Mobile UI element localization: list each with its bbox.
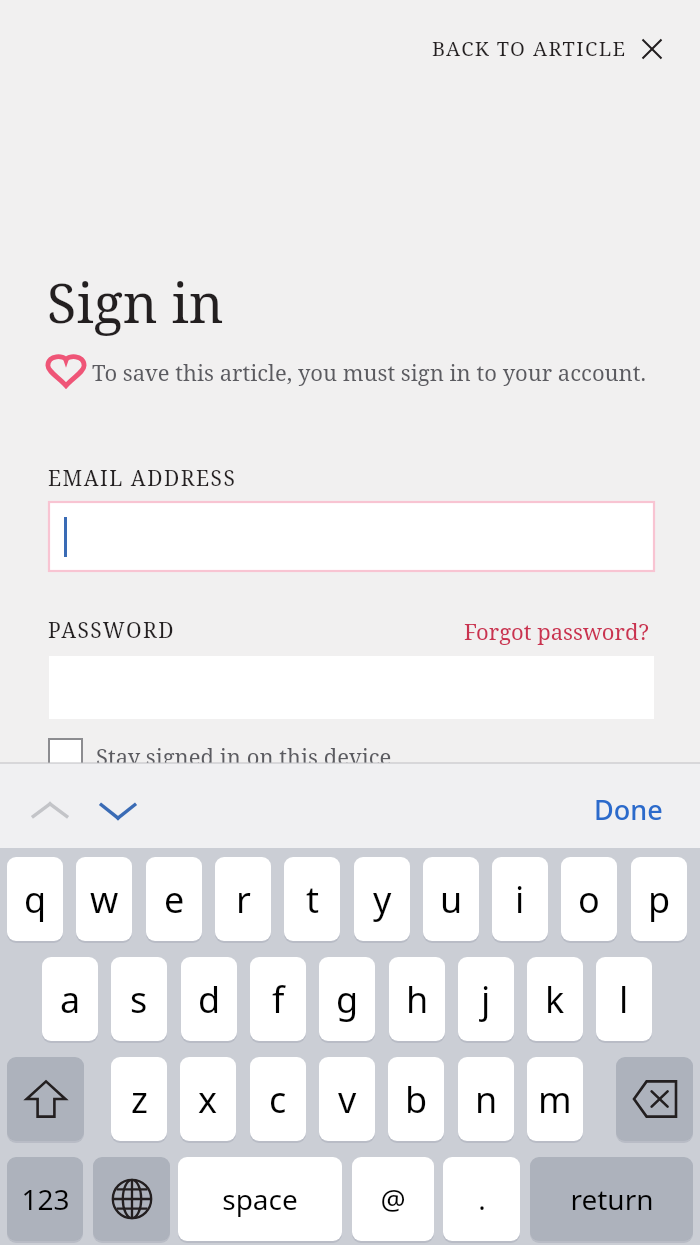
button[interactable]: n — [458, 1057, 514, 1141]
button[interactable]: a — [42, 957, 98, 1041]
button[interactable]: p — [631, 857, 687, 941]
staticText: t — [306, 875, 319, 924]
staticText: return — [570, 1180, 654, 1218]
button[interactable]: w — [76, 857, 132, 941]
staticText: EMAIL ADDRESS — [48, 464, 237, 493]
button[interactable]: return — [530, 1157, 693, 1241]
staticText: e — [164, 875, 185, 924]
button[interactable]: . — [443, 1157, 520, 1241]
button[interactable]: Done — [588, 785, 669, 834]
button[interactable]: Previous field — [28, 789, 72, 833]
button[interactable]: b — [388, 1057, 444, 1141]
staticText: PASSWORD — [48, 616, 176, 645]
button[interactable]: x — [180, 1057, 236, 1141]
staticText: Stay signed in on this device — [96, 741, 392, 763]
staticText: p — [648, 875, 671, 924]
staticText: q — [24, 875, 47, 924]
staticText: Forgot password? — [464, 616, 649, 646]
staticText: f — [272, 975, 285, 1024]
staticText: l — [619, 975, 629, 1024]
staticText: 123 — [21, 1180, 70, 1218]
button[interactable]: i — [492, 857, 548, 941]
staticText: . — [478, 1180, 486, 1218]
staticText: z — [131, 1075, 148, 1124]
staticText: k — [545, 975, 565, 1024]
button[interactable]: e — [146, 857, 202, 941]
staticText: u — [440, 875, 463, 924]
staticText: c — [269, 1075, 287, 1124]
staticText: v — [338, 1075, 357, 1124]
button[interactable]: f — [250, 957, 306, 1041]
button[interactable]: @ — [352, 1157, 434, 1241]
button[interactable]: r — [215, 857, 271, 941]
button[interactable]: y — [354, 857, 410, 941]
button[interactable]: 123 — [7, 1157, 83, 1241]
staticText: space — [222, 1180, 298, 1218]
staticText: y — [373, 875, 392, 924]
button[interactable]: d — [181, 957, 237, 1041]
button[interactable]: space — [178, 1157, 342, 1241]
staticText: s — [130, 975, 148, 1024]
staticText: g — [336, 975, 359, 1024]
other: Close — [641, 38, 663, 60]
button[interactable]: Shift — [7, 1057, 84, 1141]
button[interactable]: h — [389, 957, 445, 1041]
staticText: x — [198, 1075, 218, 1124]
staticText: h — [406, 975, 429, 1024]
button[interactable] — [49, 502, 654, 571]
button[interactable]: k — [527, 957, 583, 1041]
staticText: o — [578, 875, 600, 924]
button[interactable]: s — [111, 957, 167, 1041]
staticText: i — [515, 875, 525, 924]
button[interactable]: m — [527, 1057, 583, 1141]
staticText: BACK TO ARTICLE — [432, 35, 627, 62]
staticText: j — [481, 975, 491, 1024]
button[interactable]: BACK TO ARTICLE — [428, 31, 667, 66]
button[interactable]: Switch keyboard — [93, 1157, 170, 1241]
staticText: b — [405, 1075, 428, 1124]
button[interactable]: Backspace — [616, 1057, 693, 1141]
button[interactable]: g — [319, 957, 375, 1041]
button[interactable]: l — [596, 957, 652, 1041]
staticText: @ — [380, 1180, 406, 1218]
button[interactable]: t — [284, 857, 340, 941]
staticText: n — [475, 1075, 498, 1124]
button[interactable]: z — [111, 1057, 167, 1141]
staticText: m — [538, 1075, 572, 1124]
staticText: a — [60, 975, 81, 1024]
staticText: Sign in — [47, 265, 224, 339]
staticText: Done — [594, 791, 663, 828]
button[interactable]: Stay signed in on this device — [49, 739, 392, 763]
button[interactable]: u — [423, 857, 479, 941]
button[interactable]: Next field — [96, 789, 140, 833]
staticText: r — [236, 875, 251, 924]
button[interactable]: q — [7, 857, 63, 941]
button[interactable]: o — [561, 857, 617, 941]
button[interactable]: j — [458, 957, 514, 1041]
staticText: d — [198, 975, 221, 1024]
button[interactable]: c — [250, 1057, 306, 1141]
staticText: w — [90, 875, 119, 924]
button[interactable]: v — [319, 1057, 375, 1141]
staticText: To save this article, you must sign in t… — [92, 357, 646, 387]
button[interactable]: Forgot password? — [460, 612, 653, 650]
